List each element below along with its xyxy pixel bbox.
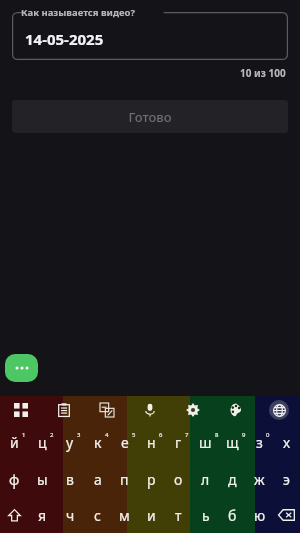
button[interactable]: д [219,461,246,497]
button[interactable]: щ [219,424,246,461]
staticText: ж [254,470,265,489]
button[interactable]: я [28,497,56,533]
button[interactable]: у [56,424,84,461]
button[interactable]: р [138,461,165,497]
button[interactable]: Готово [12,100,288,133]
button[interactable]: ь [192,497,219,533]
button[interactable]: а [84,461,111,497]
staticText: р [147,470,156,489]
staticText: п [120,470,129,489]
button[interactable]: п [111,461,138,497]
button[interactable]: ю [246,497,273,533]
button[interactable]: е [111,424,138,461]
staticText: 0 [266,431,270,439]
staticText: и [147,506,156,525]
staticText: 8 [215,431,219,439]
button[interactable]: т [165,497,192,533]
staticText: о [174,470,183,489]
staticText: у [66,433,74,452]
button[interactable]: ф [0,461,28,497]
staticText: ф [9,470,20,489]
button[interactable]: Apps [0,396,42,424]
staticText: м [119,506,130,525]
staticText: г [175,433,182,452]
staticText: х [283,433,291,452]
button[interactable]: Clipboard [42,396,85,424]
staticText: 5 [132,431,136,439]
button[interactable]: и [138,497,165,533]
staticText: т [175,506,182,525]
staticText: 6 [159,431,163,439]
staticText: ч [66,506,75,525]
staticText: д [228,470,237,489]
button[interactable]: ш [192,424,219,461]
button[interactable]: Themes [214,396,257,424]
staticText: 3 [77,431,81,439]
staticText: ю [254,506,266,525]
staticText: е [121,433,129,452]
button[interactable]: й [0,424,28,461]
staticText: з [256,433,263,452]
staticText: й [10,433,19,452]
staticText: 7 [185,431,189,439]
staticText: я [38,506,47,525]
button[interactable]: Translate [85,396,128,424]
button[interactable]: м [111,497,138,533]
staticText: в [66,470,74,489]
button[interactable]: More options [5,354,38,382]
button[interactable]: н [138,424,165,461]
staticText: к [94,433,102,452]
staticText: 1 [22,431,26,439]
button[interactable]: в [56,461,84,497]
staticText: щ [226,433,239,452]
staticText: ш [199,433,212,452]
button[interactable]: к [84,424,111,461]
staticText: ы [37,470,48,489]
button[interactable]: Backspace [273,497,300,533]
button[interactable]: л [192,461,219,497]
button[interactable]: Shift [0,497,28,533]
staticText: ц [38,433,47,452]
staticText: с [94,506,101,525]
staticText: ь [202,506,210,525]
button[interactable]: ы [28,461,56,497]
staticText: а [94,470,102,489]
button[interactable]: Change language [257,396,300,424]
button[interactable]: э [273,461,300,497]
button[interactable]: 14-05-2025 [12,12,288,60]
staticText: 14-05-2025 [25,29,104,49]
staticText: 10 из 100 [240,66,286,80]
button[interactable]: х [273,424,300,461]
button[interactable]: з [246,424,273,461]
staticText: 4 [105,431,109,439]
button[interactable]: б [219,497,246,533]
staticText: 9 [242,431,246,439]
staticText: б [228,506,237,525]
staticText: э [283,470,290,489]
staticText: л [201,470,210,489]
staticText: 2 [50,431,54,439]
button[interactable]: г [165,424,192,461]
button[interactable]: о [165,461,192,497]
button[interactable]: Settings [171,396,214,424]
button[interactable]: Voice input [128,396,171,424]
staticText: Готово [128,108,172,126]
button[interactable]: ч [56,497,84,533]
staticText: н [147,433,156,452]
staticText: Как называется видео? [21,6,136,19]
button[interactable]: ж [246,461,273,497]
button[interactable]: с [84,497,111,533]
button[interactable]: ц [28,424,56,461]
